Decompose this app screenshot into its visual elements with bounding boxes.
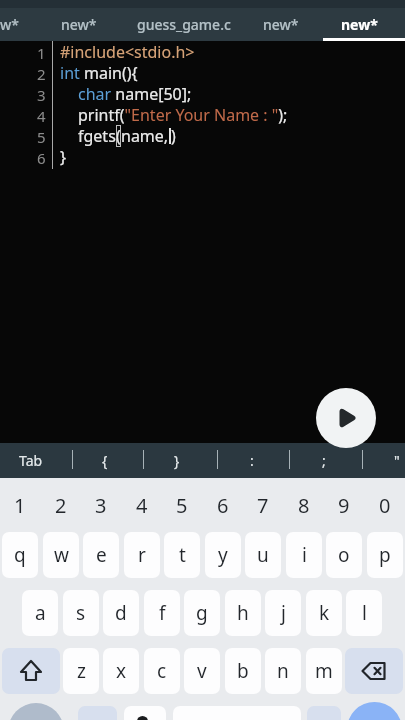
button[interactable]: e (83, 532, 119, 578)
staticText: c (157, 658, 167, 684)
staticText: i (302, 542, 307, 568)
staticText: w (54, 542, 69, 568)
button[interactable]: 9 (324, 486, 364, 524)
button[interactable]: k (306, 590, 342, 636)
staticText: 1 (14, 492, 26, 519)
button[interactable] (347, 702, 402, 720)
button[interactable]: h (225, 590, 261, 636)
staticText: b (237, 658, 249, 684)
button[interactable]: l (346, 590, 382, 636)
staticText: 6 (217, 492, 229, 519)
button[interactable]: new* (263, 15, 299, 34)
staticText: q (14, 542, 26, 568)
button[interactable]: w* (0, 15, 19, 34)
button[interactable]: 0 (365, 486, 405, 524)
button[interactable] (78, 706, 117, 720)
button[interactable] (8, 703, 64, 720)
staticText: r (138, 542, 146, 568)
button[interactable]: u (245, 532, 281, 578)
staticText: } (60, 146, 67, 168)
button[interactable] (316, 388, 376, 448)
staticText: o (338, 542, 350, 568)
staticText: 0 (379, 492, 391, 519)
button[interactable]: 7 (243, 486, 283, 524)
staticText: v (197, 658, 207, 684)
button[interactable]: m (306, 648, 342, 694)
button[interactable]: " (394, 451, 400, 470)
staticText: e (96, 542, 107, 568)
button[interactable]: guess_game.c (137, 15, 231, 34)
button[interactable]: Tab (19, 451, 43, 470)
staticText: 4 (136, 492, 148, 519)
button[interactable]: 3 (81, 486, 121, 524)
staticText: z (77, 658, 86, 684)
staticText: f (159, 600, 166, 626)
button[interactable]: n (265, 648, 301, 694)
staticText: fgets (78, 125, 116, 147)
button[interactable]: c (144, 648, 180, 694)
staticText: m (315, 658, 333, 684)
staticText: printf("Enter Your Name : "); (78, 104, 288, 126)
staticText: l (362, 600, 367, 626)
button[interactable]: 5 (162, 486, 202, 524)
staticText: d (115, 600, 127, 626)
staticText: 5 (176, 492, 188, 519)
staticText: 6 (37, 148, 46, 168)
staticText: 1 (37, 43, 46, 63)
button[interactable]: new* (61, 15, 97, 34)
button[interactable]: r (124, 532, 160, 578)
button[interactable] (124, 706, 166, 720)
staticText: ( (116, 125, 121, 147)
button[interactable]: f (144, 590, 180, 636)
button[interactable]: 6 (203, 486, 243, 524)
button[interactable] (2, 648, 60, 694)
button[interactable]: i (286, 532, 322, 578)
button[interactable]: new* (341, 15, 378, 34)
staticText: n (277, 658, 289, 684)
staticText: 8 (298, 492, 310, 519)
button[interactable]: x (103, 648, 139, 694)
button[interactable]: 2 (41, 486, 81, 524)
staticText: u (257, 542, 269, 568)
button[interactable] (345, 648, 403, 694)
staticText: char name[50]; (78, 83, 192, 105)
button[interactable]: y (205, 532, 241, 578)
button[interactable]: ; (322, 451, 326, 470)
staticText: 2 (37, 64, 46, 84)
button[interactable]: b (225, 648, 261, 694)
staticText: k (319, 600, 330, 626)
button[interactable]: a (22, 590, 58, 636)
button[interactable]: w (43, 532, 79, 578)
staticText: h (237, 600, 249, 626)
staticText: 9 (338, 492, 350, 519)
staticText: 4 (37, 106, 46, 126)
button[interactable]: 4 (122, 486, 162, 524)
button[interactable]: 1 (0, 486, 40, 524)
staticText: p (379, 542, 391, 568)
button[interactable]: g (184, 590, 220, 636)
button[interactable]: p (367, 532, 403, 578)
button[interactable]: : (250, 451, 254, 470)
button[interactable]: d (103, 590, 139, 636)
button[interactable]: z (63, 648, 99, 694)
staticText: g (196, 600, 208, 626)
button[interactable]: j (265, 590, 301, 636)
button[interactable]: s (63, 590, 99, 636)
staticText: a (35, 600, 46, 626)
staticText: 5 (37, 127, 46, 147)
button[interactable]: 8 (284, 486, 324, 524)
button[interactable]: t (164, 532, 200, 578)
staticText: t (179, 542, 186, 568)
staticText: j (281, 600, 286, 626)
staticText: 7 (257, 492, 269, 519)
staticText: 2 (55, 492, 67, 519)
button[interactable]: o (326, 532, 362, 578)
button[interactable] (307, 706, 341, 720)
staticText: ) (171, 125, 176, 147)
button[interactable]: v (184, 648, 220, 694)
button[interactable]: } (174, 451, 180, 470)
button[interactable]: q (2, 532, 38, 578)
staticText: y (218, 542, 228, 568)
button[interactable]: { (102, 451, 108, 470)
